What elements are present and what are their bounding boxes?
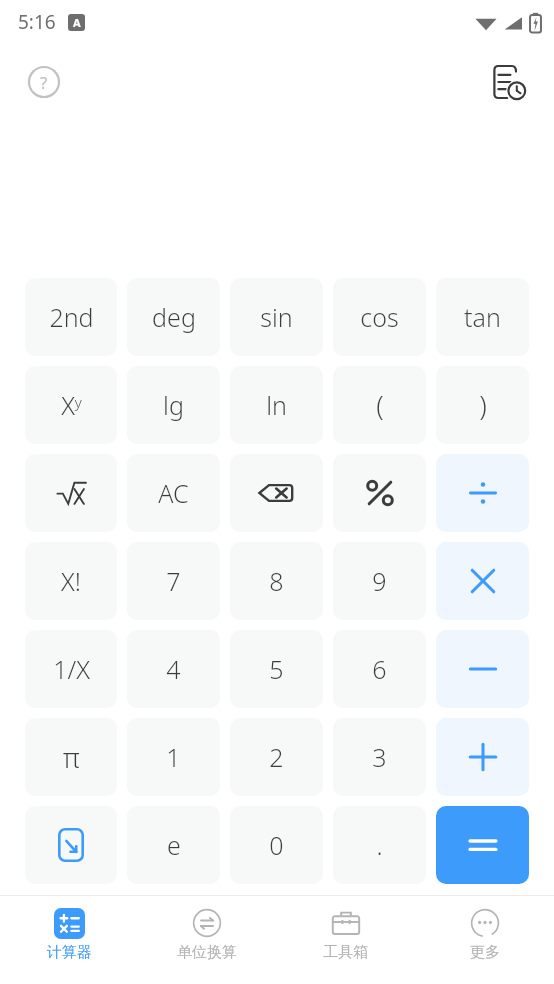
button[interactable]: History: [480, 54, 536, 110]
button[interactable]: Plus: [436, 718, 529, 796]
staticText: cos: [360, 300, 399, 334]
button[interactable]: Hide keypad: [25, 806, 117, 884]
staticText: 5: [269, 652, 284, 686]
staticText: 2: [269, 740, 284, 774]
button[interactable]: Square root: [25, 454, 117, 532]
staticText: π: [63, 739, 80, 776]
button[interactable]: tan: [436, 278, 529, 356]
staticText: (: [376, 387, 384, 424]
staticText: 6: [372, 652, 387, 686]
button[interactable]: sin: [230, 278, 323, 356]
button[interactable]: Percent: [333, 454, 426, 532]
button[interactable]: Multiply: [436, 542, 529, 620]
button[interactable]: Divide: [436, 454, 529, 532]
staticText: 单位换算: [177, 943, 237, 962]
staticText: tan: [464, 300, 501, 334]
staticText: ?: [40, 71, 48, 94]
button[interactable]: 6: [333, 630, 426, 708]
button[interactable]: Help: [22, 60, 66, 104]
staticText: ln: [266, 388, 287, 422]
button[interactable]: AC: [127, 454, 220, 532]
staticText: ): [479, 387, 487, 424]
button[interactable]: 7: [127, 542, 220, 620]
button[interactable]: e: [127, 806, 220, 884]
button[interactable]: cos: [333, 278, 426, 356]
button[interactable]: Xy: [25, 366, 117, 444]
button[interactable]: 更多: [415, 896, 554, 984]
button[interactable]: Minus: [436, 630, 529, 708]
button[interactable]: 2: [230, 718, 323, 796]
button[interactable]: 1: [127, 718, 220, 796]
staticText: deg: [152, 300, 196, 334]
button[interactable]: Pi: [25, 718, 117, 796]
button[interactable]: ln: [230, 366, 323, 444]
button[interactable]: 5: [230, 630, 323, 708]
button[interactable]: 8: [230, 542, 323, 620]
staticText: 0: [269, 828, 284, 862]
button[interactable]: 工具箱: [276, 896, 415, 984]
staticText: 工具箱: [323, 943, 368, 962]
staticText: 计算器: [47, 943, 92, 962]
button[interactable]: deg: [127, 278, 220, 356]
button[interactable]: (: [333, 366, 426, 444]
staticText: 8: [269, 564, 284, 598]
staticText: 7: [166, 564, 181, 598]
staticText: 1: [166, 740, 181, 774]
staticText: 1/X: [53, 652, 90, 686]
button[interactable]: 2nd: [25, 278, 117, 356]
button[interactable]: ): [436, 366, 529, 444]
staticText: 4: [166, 652, 181, 686]
staticText: 9: [372, 564, 387, 598]
button[interactable]: Equals: [436, 806, 529, 884]
staticText: 更多: [470, 943, 500, 962]
button[interactable]: Backspace: [230, 454, 323, 532]
button[interactable]: 4: [127, 630, 220, 708]
staticText: sin: [260, 300, 293, 334]
staticText: lg: [163, 388, 184, 422]
button[interactable]: 0: [230, 806, 323, 884]
staticText: X!: [61, 564, 81, 598]
staticText: e: [167, 828, 181, 862]
button[interactable]: lg: [127, 366, 220, 444]
button[interactable]: 3: [333, 718, 426, 796]
button[interactable]: 单位换算: [138, 896, 276, 984]
button[interactable]: 1/X: [25, 630, 117, 708]
staticText: A: [73, 15, 81, 30]
button[interactable]: 9: [333, 542, 426, 620]
staticText: .: [376, 828, 383, 862]
button[interactable]: .: [333, 806, 426, 884]
staticText: 5:16: [18, 9, 56, 35]
staticText: 2nd: [49, 300, 94, 334]
button[interactable]: 计算器: [0, 896, 138, 984]
staticText: 3: [372, 740, 387, 774]
button[interactable]: X!: [25, 542, 117, 620]
staticText: Xy: [61, 388, 82, 422]
staticText: AC: [158, 476, 189, 510]
